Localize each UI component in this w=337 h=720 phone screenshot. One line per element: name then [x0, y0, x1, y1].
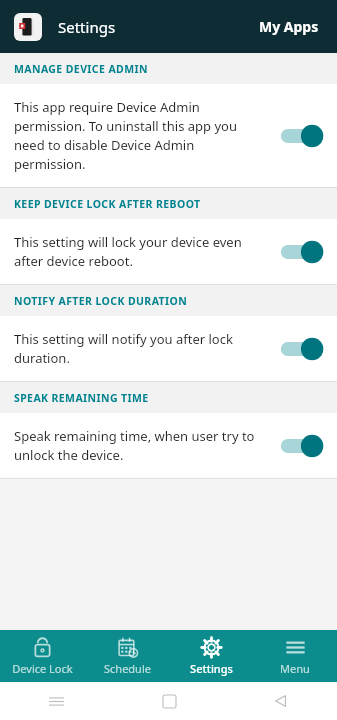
- button[interactable]: Toggle setting: [279, 238, 325, 266]
- button[interactable]: Toggle setting: [279, 335, 325, 363]
- staticText: SPEAK REMAINING TIME: [14, 391, 149, 405]
- button[interactable]: My Apps: [255, 11, 323, 42]
- staticText: KEEP DEVICE LOCK AFTER REBOOT: [14, 197, 201, 211]
- button[interactable]: Toggle setting: [279, 122, 325, 150]
- staticText: Menu: [280, 661, 310, 676]
- staticText: This setting will notify you after lock …: [14, 330, 269, 367]
- staticText: Device Lock: [12, 661, 73, 676]
- staticText: Schedule: [104, 661, 151, 676]
- staticText: NOTIFY AFTER LOCK DURATION: [14, 294, 188, 308]
- button[interactable]: App icon: [14, 13, 42, 41]
- button[interactable]: Recents: [0, 682, 113, 720]
- button[interactable]: Speak remaining time, when user try to u…: [0, 413, 337, 478]
- button[interactable]: Toggle setting: [279, 432, 325, 460]
- staticText: Settings: [190, 661, 233, 676]
- button[interactable]: This app require Device Admin permission…: [0, 84, 337, 187]
- staticText: This app require Device Admin permission…: [14, 98, 269, 173]
- staticText: This setting will lock your device even …: [14, 233, 269, 270]
- staticText: Speak remaining time, when user try to u…: [14, 427, 269, 464]
- button[interactable]: This setting will notify you after lock …: [0, 316, 337, 381]
- button[interactable]: Settings: [169, 631, 253, 682]
- button[interactable]: Home: [113, 682, 225, 720]
- button[interactable]: Menu: [253, 631, 337, 682]
- staticText: My Apps: [259, 17, 319, 36]
- button[interactable]: Back: [225, 682, 337, 720]
- button[interactable]: This setting will lock your device even …: [0, 219, 337, 284]
- staticText: Settings: [58, 17, 116, 37]
- staticText: MANAGE DEVICE ADMIN: [14, 62, 148, 76]
- button[interactable]: Schedule: [85, 631, 169, 682]
- button[interactable]: Device Lock: [0, 631, 85, 682]
